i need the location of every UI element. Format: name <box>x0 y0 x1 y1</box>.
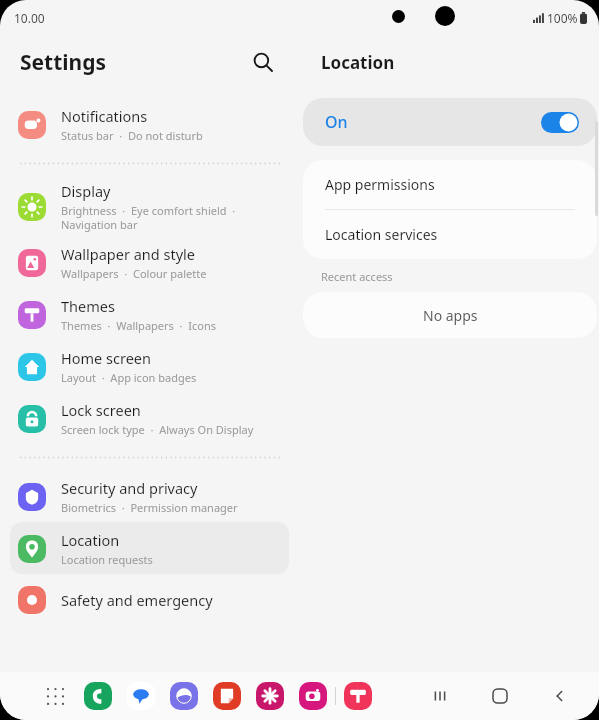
button[interactable]: phone <box>84 682 112 710</box>
staticText: Security and privacy <box>61 478 198 498</box>
button[interactable]: Home screen <box>10 340 289 392</box>
staticText: App permissions <box>325 175 435 194</box>
button[interactable]: No apps <box>303 292 597 338</box>
button[interactable]: On <box>303 98 597 146</box>
staticText: Location <box>61 530 120 550</box>
button[interactable]: Apps <box>40 681 70 711</box>
button[interactable]: msg <box>127 682 155 710</box>
staticText: Location services <box>325 225 438 244</box>
button[interactable]: camera <box>299 682 327 710</box>
button[interactable]: Lock screen <box>10 392 289 444</box>
button[interactable]: notes <box>213 682 241 710</box>
staticText: Wallpaper and style <box>61 244 195 264</box>
button[interactable]: gallery <box>256 682 284 710</box>
staticText: Display <box>61 181 111 201</box>
button[interactable]: Home <box>483 679 517 713</box>
staticText: No apps <box>423 306 478 325</box>
button[interactable]: Back <box>543 679 577 713</box>
button[interactable]: Themes <box>10 288 289 340</box>
staticText: Screen lock type · Always On Display <box>61 422 254 437</box>
button[interactable]: Search <box>243 42 283 82</box>
button[interactable]: Security and privacy <box>10 470 289 522</box>
staticText: Notifications <box>61 106 148 126</box>
staticText: Recent access <box>321 269 393 284</box>
staticText: Settings <box>20 48 243 77</box>
staticText: Status bar · Do not disturb <box>61 128 203 143</box>
button[interactable]: Location <box>10 522 289 574</box>
button[interactable]: Location services <box>303 210 597 259</box>
button[interactable]: Safety and emergency <box>10 574 289 626</box>
staticText: Brightness · Eye comfort shield · Naviga… <box>61 203 236 232</box>
staticText: Location <box>321 51 395 74</box>
staticText: 100% <box>547 10 578 26</box>
staticText: Themes <box>61 296 115 316</box>
button[interactable]: Recents <box>423 679 457 713</box>
button[interactable]: internet <box>170 682 198 710</box>
staticText: Biometrics · Permission manager <box>61 500 238 515</box>
staticText: Wallpapers · Colour palette <box>61 266 207 281</box>
button[interactable]: Notifications <box>10 98 289 150</box>
staticText: Safety and emergency <box>61 590 213 610</box>
button[interactable]: paint <box>344 682 372 710</box>
staticText: Themes · Wallpapers · Icons <box>61 318 216 333</box>
staticText: Home screen <box>61 348 151 368</box>
staticText: Lock screen <box>61 400 141 420</box>
staticText: 10.00 <box>14 10 45 26</box>
button[interactable]: Wallpaper and style <box>10 236 289 288</box>
staticText: Layout · App icon badges <box>61 370 197 385</box>
button[interactable]: App permissions <box>303 160 597 209</box>
staticText: Location requests <box>61 552 153 567</box>
button[interactable]: Display <box>10 176 289 236</box>
staticText: On <box>325 111 541 133</box>
